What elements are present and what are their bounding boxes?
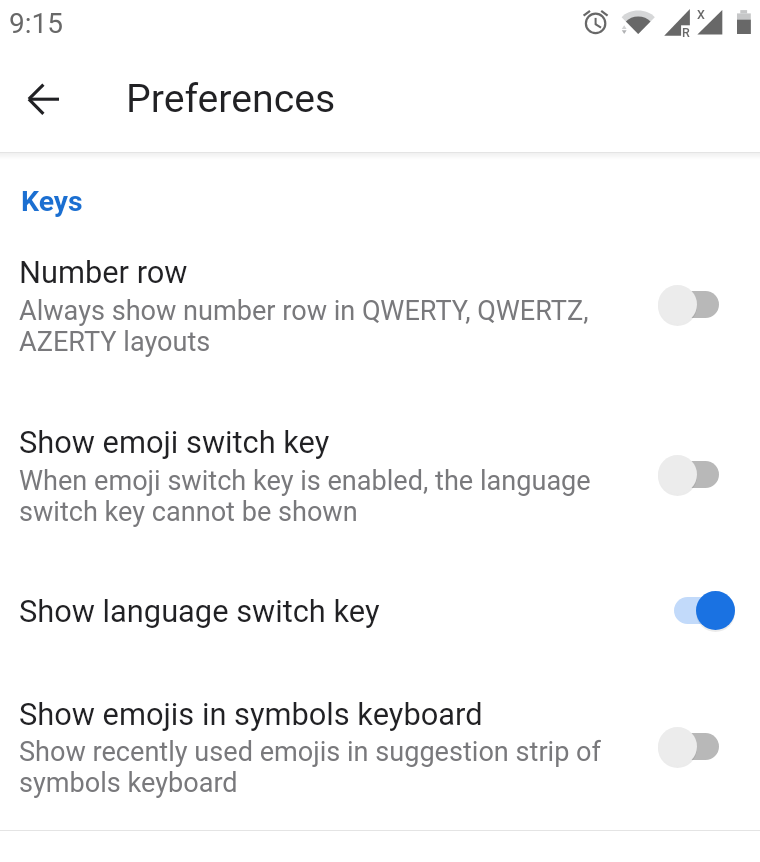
other: Wi-Fi xyxy=(618,5,658,45)
button[interactable]: Keys xyxy=(0,173,760,225)
other: Battery xyxy=(733,8,755,38)
button[interactable]: Navigate up xyxy=(10,65,76,131)
other: No SIM signal xyxy=(693,4,727,40)
button[interactable]: Switch, on xyxy=(645,576,741,642)
staticText: Always show number row in QWERTY, QWERTZ… xyxy=(19,295,619,358)
other: Roaming signal xyxy=(660,4,694,40)
button[interactable]: Switch, off xyxy=(645,270,741,338)
staticText: Number row xyxy=(19,254,188,290)
button[interactable]: Switch, off xyxy=(645,440,741,508)
staticText: 9:15 xyxy=(9,7,63,40)
staticText: Preferences xyxy=(126,76,336,122)
button[interactable]: Show language switch key xyxy=(0,577,760,643)
staticText: Show language switch key xyxy=(19,593,380,629)
staticText: When emoji switch key is enabled, the la… xyxy=(19,465,619,528)
staticText: Show emojis in symbols keyboard xyxy=(19,696,483,732)
button[interactable]: Show emojis in symbols keyboard xyxy=(0,680,760,816)
staticText: R xyxy=(682,25,690,40)
button[interactable]: Switch, off xyxy=(645,712,741,780)
button[interactable]: Show emoji switch key xyxy=(0,408,760,544)
staticText: Show emoji switch key xyxy=(19,424,330,460)
staticText: Show recently used emojis in suggestion … xyxy=(19,736,619,799)
staticText: Keys xyxy=(21,185,83,218)
staticText: X xyxy=(697,7,705,22)
button[interactable]: Number row xyxy=(0,238,760,374)
other: Alarm set xyxy=(580,5,612,37)
